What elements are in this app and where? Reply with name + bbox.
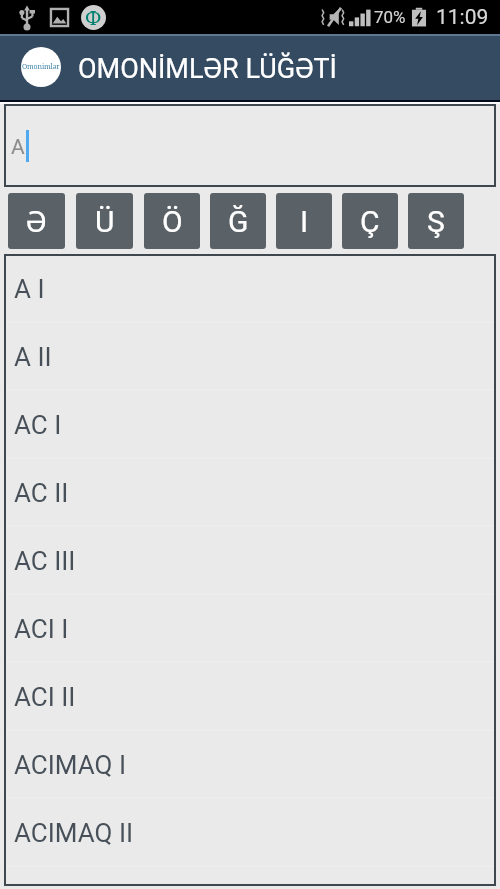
staticText: Ö bbox=[162, 204, 183, 239]
staticText: A bbox=[11, 135, 25, 160]
button[interactable]: Ç bbox=[342, 193, 398, 249]
staticText: AC I bbox=[14, 410, 62, 440]
button[interactable]: ACI II bbox=[6, 663, 494, 731]
button[interactable]: ACIMAQ I bbox=[6, 731, 494, 799]
button[interactable]: A I bbox=[6, 256, 494, 323]
button[interactable]: Ə bbox=[8, 193, 65, 249]
button[interactable]: AC I bbox=[6, 391, 494, 459]
button[interactable]: Ü bbox=[76, 193, 133, 249]
staticText: OMONİMLƏR LÜĞƏTİ bbox=[78, 53, 337, 85]
staticText: Omonimlər bbox=[22, 62, 60, 72]
staticText: Ş bbox=[427, 204, 445, 239]
staticText: AC III bbox=[14, 546, 76, 576]
staticText: Ü bbox=[95, 204, 115, 239]
other: USB connected bbox=[19, 5, 35, 30]
staticText: Ğ bbox=[228, 204, 249, 239]
staticText: Ф bbox=[85, 5, 102, 30]
button[interactable]: Ğ bbox=[210, 193, 266, 249]
staticText: Ç bbox=[360, 204, 380, 239]
staticText: Ə bbox=[26, 204, 47, 239]
button[interactable]: AC II bbox=[6, 459, 494, 527]
button[interactable]: Ş bbox=[408, 193, 464, 249]
button[interactable]: ACIMAQ II bbox=[6, 799, 494, 867]
other: Silent mode bbox=[321, 6, 348, 28]
other: Screenshot captured bbox=[50, 8, 69, 27]
staticText: ACI I bbox=[14, 614, 69, 644]
button[interactable]: A bbox=[6, 106, 494, 185]
button[interactable]: AC III bbox=[6, 527, 494, 595]
staticText: 11:09 bbox=[436, 5, 489, 30]
button[interactable]: A II bbox=[6, 323, 494, 391]
staticText: 70% bbox=[374, 7, 406, 27]
staticText: ACIMAQ II bbox=[14, 818, 134, 848]
staticText: ACI II bbox=[14, 682, 76, 712]
staticText: ACIMAQ I bbox=[14, 750, 126, 780]
staticText: AC II bbox=[14, 478, 69, 508]
button[interactable]: Ö bbox=[144, 193, 200, 249]
staticText: A I bbox=[14, 274, 45, 304]
staticText: I bbox=[300, 204, 309, 239]
staticText: A II bbox=[14, 342, 52, 372]
button[interactable]: I bbox=[276, 193, 332, 249]
button[interactable]: ACI I bbox=[6, 595, 494, 663]
